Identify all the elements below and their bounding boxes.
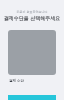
staticText: 결제수단을 선택해주세요 xyxy=(0,15,64,22)
staticText: 주문이 완료되었습니다 xyxy=(0,10,64,14)
staticText: 결제 수단 xyxy=(9,78,24,83)
